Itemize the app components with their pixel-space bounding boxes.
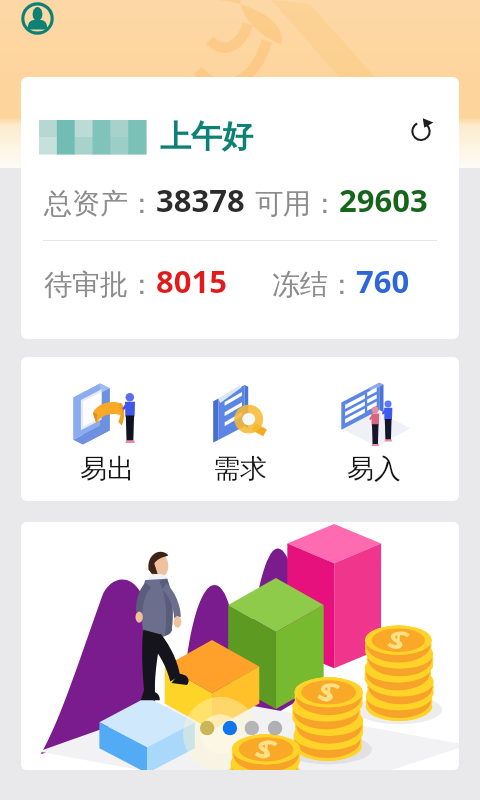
staticText: 760 xyxy=(356,260,410,302)
staticText: 可用： xyxy=(255,186,339,221)
staticText: 8015 xyxy=(156,260,227,302)
staticText: 总资产： xyxy=(44,186,156,221)
staticText: 冻结： xyxy=(272,267,356,302)
staticText: 待审批： xyxy=(44,267,156,302)
button[interactable]: 需求 xyxy=(192,372,288,486)
button[interactable]: Refresh xyxy=(404,113,438,147)
button[interactable]: 易出 xyxy=(59,372,155,486)
staticText: 易入 xyxy=(347,452,401,486)
button[interactable]: Profile xyxy=(21,2,54,35)
staticText: 易出 xyxy=(80,452,134,486)
staticText: 需求 xyxy=(213,452,267,486)
staticText: 29603 xyxy=(339,179,428,221)
staticText: 上午好 xyxy=(160,117,253,156)
staticText: 38378 xyxy=(156,179,245,221)
button[interactable]: 易入 xyxy=(326,372,422,486)
